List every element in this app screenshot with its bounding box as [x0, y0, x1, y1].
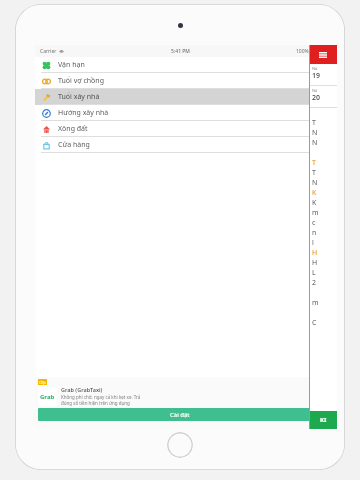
staticText: c	[312, 218, 316, 228]
staticText: Tuổi xây nhà	[58, 92, 100, 102]
staticText: K	[312, 198, 317, 208]
staticText: 100%	[296, 48, 309, 55]
staticText: l	[312, 238, 314, 248]
staticText: KI	[320, 416, 327, 424]
staticText: 5:41 PM	[171, 48, 190, 55]
staticText: m	[312, 298, 319, 308]
staticText: 2	[312, 278, 317, 288]
staticText: N	[312, 138, 318, 148]
staticText: T	[312, 168, 316, 178]
button[interactable]: Cửa hàng	[35, 137, 325, 153]
staticText: Nă	[312, 66, 318, 71]
button[interactable]: Hướng xây nhà	[35, 105, 325, 121]
staticText: Nă	[312, 88, 318, 93]
staticText: Xông đất	[58, 124, 88, 134]
button[interactable]: Cài đặt	[38, 408, 322, 421]
staticText: Carrier	[40, 48, 57, 55]
staticText: Vận hạn	[58, 60, 85, 70]
staticText: Grab (GrabTaxi)	[61, 386, 103, 393]
button[interactable]: Tuổi xây nhà	[35, 89, 325, 105]
button[interactable]: Menu	[309, 45, 337, 64]
button[interactable]: KI	[309, 411, 337, 429]
staticText: n	[312, 228, 317, 238]
staticText: Hướng xây nhà	[58, 108, 109, 118]
staticText: 20	[312, 93, 321, 103]
staticText: ⓘ▷	[39, 380, 47, 385]
button[interactable]: Vận hạn	[35, 57, 325, 73]
button[interactable]: Tuổi vợ chồng	[35, 73, 325, 89]
staticText: L	[312, 268, 316, 278]
staticText: C	[312, 318, 317, 328]
staticText: Grab	[40, 393, 55, 401]
staticText: H	[312, 258, 318, 268]
staticText: Cửa hàng	[58, 140, 90, 150]
staticText: T	[312, 118, 316, 128]
staticText: H	[312, 248, 318, 258]
staticText: 19	[312, 71, 321, 81]
staticText: Tuổi vợ chồng	[58, 76, 104, 86]
staticText: m	[312, 208, 319, 218]
staticText: N	[312, 128, 318, 138]
staticText: Cài đặt	[170, 411, 190, 419]
staticText: Không phí chờ, ngay cả khi kẹt xe. Trả đ…	[61, 394, 141, 406]
staticText: T	[312, 158, 316, 168]
button[interactable]: Xông đất	[35, 121, 325, 137]
staticText: K	[312, 188, 317, 198]
staticText: N	[312, 178, 318, 188]
button[interactable]: Grab	[38, 386, 322, 406]
